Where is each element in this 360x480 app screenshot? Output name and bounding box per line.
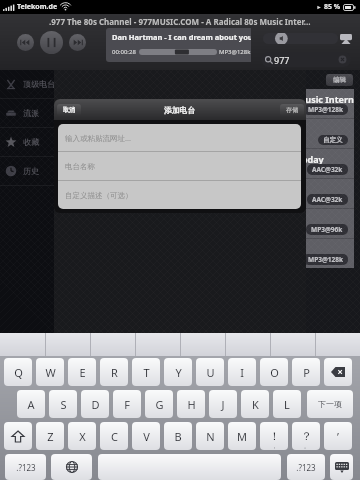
- button[interactable]: B: [164, 422, 192, 450]
- button[interactable]: U: [196, 358, 224, 386]
- button[interactable]: K: [241, 390, 269, 418]
- staticText: MP3@128k: [219, 48, 251, 56]
- staticText: ！: [269, 429, 280, 443]
- button[interactable]: D: [81, 390, 109, 418]
- staticText: G: [155, 397, 164, 412]
- button[interactable]: 流派: [0, 99, 54, 127]
- button[interactable]: Previous: [17, 34, 34, 51]
- staticText: 取消: [63, 106, 75, 114]
- button[interactable]: ’: [324, 422, 352, 450]
- button[interactable]: Q: [4, 358, 32, 386]
- button[interactable]: Next: [69, 34, 86, 51]
- button[interactable]: T: [132, 358, 160, 386]
- button[interactable]: C: [100, 422, 128, 450]
- button[interactable]: Shift: [4, 422, 32, 450]
- button[interactable]: R: [100, 358, 128, 386]
- staticText: N: [206, 429, 215, 444]
- button[interactable]: Volume: [263, 33, 338, 44]
- staticText: MP3@96k: [311, 225, 343, 234]
- staticText: 编辑: [333, 76, 346, 84]
- button[interactable]: J: [209, 390, 237, 418]
- button[interactable]: Dan Hartman - I can dream about you (198: [106, 28, 251, 62]
- staticText: H: [187, 397, 196, 412]
- button[interactable]: 977: [261, 52, 351, 67]
- button[interactable]: Hide keyboard: [330, 454, 353, 480]
- button[interactable]: 下一项: [307, 390, 353, 418]
- button[interactable]: 编辑: [326, 74, 353, 86]
- staticText: 输入或粘贴流网址...: [65, 133, 132, 143]
- button[interactable]: W: [36, 358, 64, 386]
- button[interactable]: M: [228, 422, 256, 450]
- button[interactable]: O: [260, 358, 288, 386]
- button[interactable]: 历史: [0, 157, 54, 185]
- staticText: Dan Hartman - I can dream about you (198: [112, 32, 251, 42]
- button[interactable]: .977 The 80s Channel - 977MUSIC.COM - A …: [54, 89, 354, 118]
- button[interactable]: S: [49, 390, 77, 418]
- staticText: Absolute Smooth Jazz - the best smooth j…: [60, 183, 306, 195]
- staticText: W: [45, 365, 56, 380]
- staticText: C: [111, 429, 118, 444]
- button[interactable]: [316, 333, 360, 356]
- button[interactable]: .?123: [287, 454, 325, 480]
- button[interactable]: [136, 333, 180, 356]
- staticText: Y: [175, 365, 182, 380]
- button[interactable]: 自定义: [54, 119, 354, 148]
- button[interactable]: [271, 333, 315, 356]
- button[interactable]: AH.FM - Trance, Progressive, Dance, Hous…: [54, 239, 354, 268]
- button[interactable]: AirPlay: [339, 32, 353, 45]
- button[interactable]: V: [132, 422, 160, 450]
- staticText: D: [91, 397, 100, 412]
- staticText: E: [79, 365, 86, 380]
- staticText: ，: [272, 443, 277, 449]
- staticText: ？: [301, 429, 312, 443]
- button[interactable]: Backspace: [324, 358, 352, 386]
- button[interactable]: [181, 333, 225, 356]
- button[interactable]: [91, 333, 135, 356]
- button[interactable]: 取消: [57, 104, 81, 116]
- button[interactable]: Absolute Chillout - the best chillout mu…: [54, 149, 354, 178]
- button[interactable]: Absolute Smooth Jazz - the best smooth j…: [54, 179, 354, 208]
- button[interactable]: ！: [260, 422, 288, 450]
- button[interactable]: L: [273, 390, 301, 418]
- staticText: A: [27, 397, 35, 412]
- button[interactable]: [0, 333, 45, 356]
- staticText: V: [143, 429, 150, 444]
- button[interactable]: Switch language: [51, 454, 92, 480]
- staticText: L: [284, 397, 290, 412]
- button[interactable]: P: [292, 358, 320, 386]
- button[interactable]: X: [68, 422, 96, 450]
- staticText: M: [237, 429, 247, 444]
- button[interactable]: G: [145, 390, 173, 418]
- staticText: 85 %: [324, 2, 341, 12]
- button[interactable]: 存储: [280, 104, 304, 116]
- button[interactable]: Pause: [40, 31, 63, 54]
- staticText: 自定义: [323, 136, 343, 144]
- staticText: MP3@128k: [308, 255, 343, 264]
- button[interactable]: [226, 333, 270, 356]
- staticText: .977 The 80s Channel - 977MUSIC.COM - A …: [49, 16, 311, 27]
- staticText: T: [143, 365, 150, 380]
- button[interactable]: AddictedToRadio.com - 80s Hits Radio Sta…: [54, 209, 354, 238]
- staticText: MP3@128k: [308, 105, 343, 114]
- button[interactable]: [98, 454, 281, 480]
- button[interactable]: I: [228, 358, 256, 386]
- button[interactable]: Z: [36, 422, 64, 450]
- button[interactable]: N: [196, 422, 224, 450]
- staticText: O: [270, 365, 279, 380]
- button[interactable]: E: [68, 358, 96, 386]
- button[interactable]: .?123: [5, 454, 46, 480]
- button[interactable]: H: [177, 390, 205, 418]
- button[interactable]: A: [17, 390, 45, 418]
- staticText: U: [206, 365, 215, 380]
- button[interactable]: ？: [292, 422, 320, 450]
- button[interactable]: Y: [164, 358, 192, 386]
- button[interactable]: 收藏: [0, 128, 54, 156]
- button[interactable]: [46, 333, 90, 356]
- button[interactable]: 顶级电台: [0, 70, 54, 98]
- staticText: 历史: [23, 166, 39, 176]
- staticText: 添加电台: [164, 105, 196, 115]
- staticText: 下一项: [318, 399, 342, 409]
- button[interactable]: F: [113, 390, 141, 418]
